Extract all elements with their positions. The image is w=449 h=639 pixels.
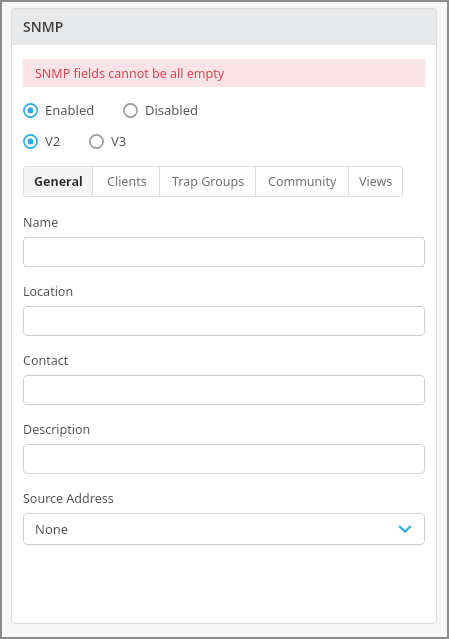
staticText: SNMP xyxy=(23,17,64,36)
staticText: Description xyxy=(23,421,91,438)
staticText: Disabled xyxy=(145,101,199,119)
button[interactable]: Clients xyxy=(93,166,160,197)
staticText: Community xyxy=(268,173,337,190)
button[interactable] xyxy=(23,375,425,405)
button[interactable]: Source Address dropdown xyxy=(23,513,425,545)
staticText: Trap Groups xyxy=(172,173,245,190)
staticText: Source Address xyxy=(23,490,114,507)
button[interactable]: Enabled xyxy=(23,101,95,119)
button[interactable]: Community xyxy=(256,166,349,197)
button[interactable]: Disabled xyxy=(123,101,199,119)
button[interactable]: Views xyxy=(349,166,403,197)
button[interactable]: V2 xyxy=(23,132,61,150)
staticText: Views xyxy=(359,173,393,190)
staticText: Location xyxy=(23,283,74,300)
staticText: V2 xyxy=(45,132,61,150)
button[interactable] xyxy=(23,306,425,336)
staticText: SNMP fields cannot be all empty xyxy=(35,65,225,82)
button[interactable] xyxy=(23,444,425,474)
staticText: Name xyxy=(23,214,59,231)
staticText: V3 xyxy=(111,132,127,150)
staticText: Contact xyxy=(23,352,69,369)
button[interactable]: Trap Groups xyxy=(160,166,256,197)
staticText: Enabled xyxy=(45,101,95,119)
button[interactable]: V3 xyxy=(89,132,127,150)
staticText: None xyxy=(35,520,397,538)
staticText: Clients xyxy=(107,173,147,190)
button[interactable] xyxy=(23,237,425,267)
button[interactable]: General xyxy=(23,166,93,197)
staticText: General xyxy=(34,173,83,190)
